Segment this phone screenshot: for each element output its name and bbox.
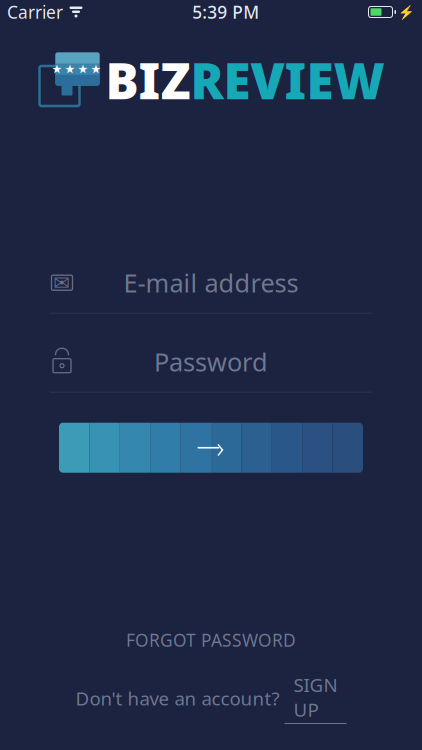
staticText: Carrier xyxy=(7,0,63,23)
staticText: BIZ xyxy=(105,47,190,113)
staticText: ★ xyxy=(90,62,101,76)
button[interactable]: Don't have an account? xyxy=(65,668,356,728)
staticText: ⚡ xyxy=(398,4,415,20)
button[interactable]: FORGOT PASSWORD xyxy=(112,623,310,656)
button[interactable]: Password xyxy=(50,340,372,392)
staticText: SIGN UP xyxy=(293,672,337,722)
staticText: Password xyxy=(154,345,268,378)
staticText: › xyxy=(216,427,224,466)
staticText: FORGOT PASSWORD xyxy=(126,628,296,651)
staticText: REVIEW xyxy=(190,47,384,113)
staticText: E-mail address xyxy=(123,266,298,299)
staticText: ★ xyxy=(51,62,62,76)
button[interactable]: Sign in xyxy=(59,423,363,473)
staticText: Don't have an account? xyxy=(75,686,279,711)
button[interactable]: ✉ xyxy=(50,261,372,313)
staticText: 5:39 PM xyxy=(192,0,259,23)
staticText: ★ xyxy=(77,62,88,76)
staticText: ★ xyxy=(64,62,75,76)
staticText: ✉ xyxy=(53,271,70,294)
